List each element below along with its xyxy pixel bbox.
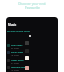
staticText: Favourite <box>25 6 40 10</box>
staticText: Focus Flow <box>11 51 23 54</box>
button[interactable]: Focus Flow <box>6 51 58 58</box>
staticText: 31 songs <box>11 62 19 65</box>
staticText: Night Drive <box>11 59 24 62</box>
button[interactable]: Morning Mix <box>6 66 58 72</box>
staticText: 24 songs <box>11 47 19 50</box>
staticText: 12 songs <box>11 69 19 72</box>
button[interactable]: Night Drive <box>6 59 58 66</box>
staticText: Music <box>8 23 17 27</box>
staticText: Morning Mix <box>11 66 25 69</box>
button[interactable]: Chill Vibes <box>6 44 58 51</box>
staticText: Chill Vibes <box>11 44 23 47</box>
staticText: Recently played songs <box>7 30 30 33</box>
staticText: 18 songs <box>11 54 19 57</box>
staticText: Discover your next <box>18 2 46 6</box>
